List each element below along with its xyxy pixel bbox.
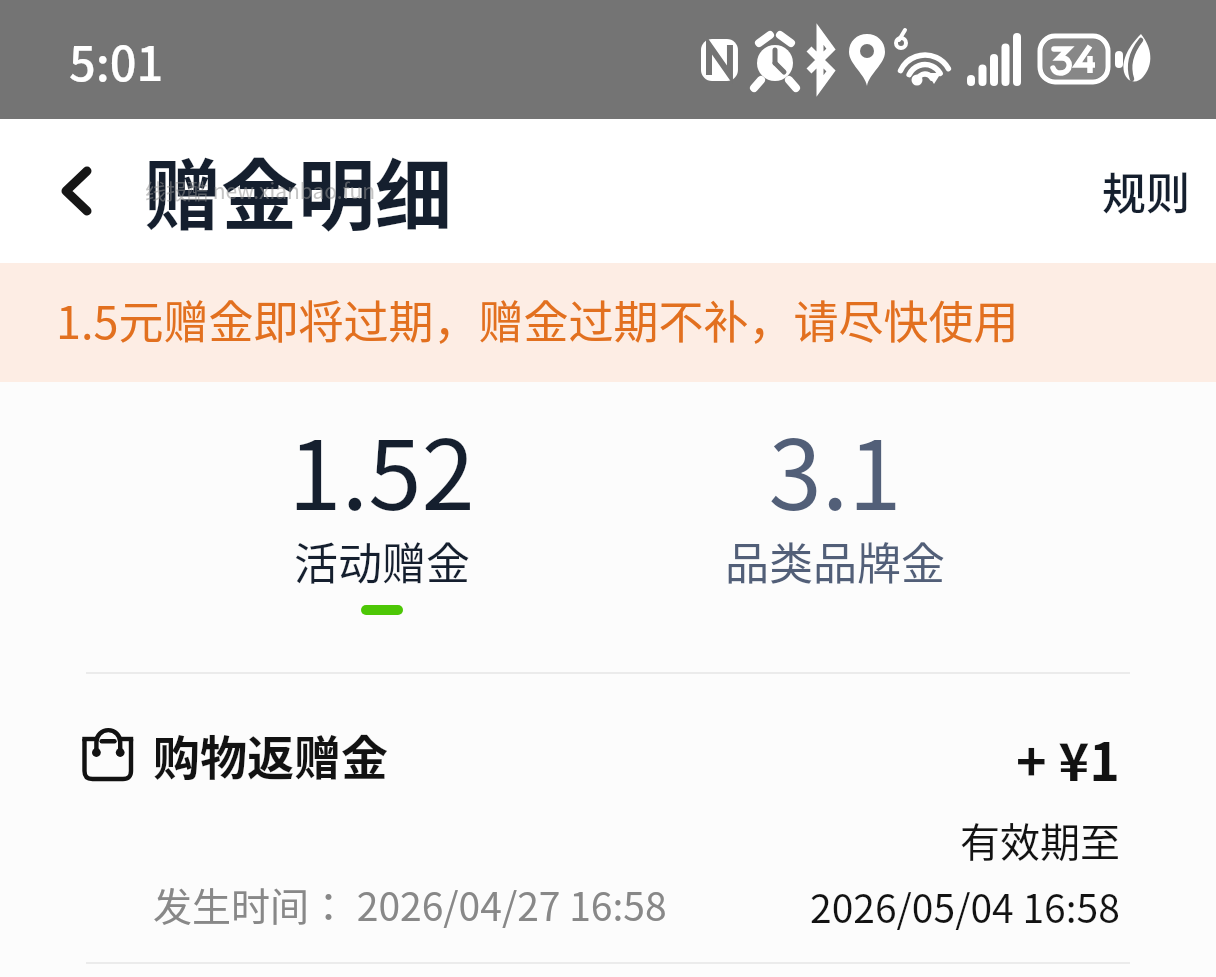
- staticText: 1.5元赠金即将过期，赠金过期不补，请尽快使用: [56, 287, 1019, 352]
- staticText: 品类品牌金: [725, 529, 945, 593]
- staticText: 1.52: [288, 399, 475, 538]
- button[interactable]: 规则: [1078, 149, 1216, 233]
- staticText: 活动赠金: [294, 529, 470, 593]
- staticText: 3.1: [768, 399, 902, 538]
- staticText: 线报酷 new.xianbao.fun: [145, 175, 376, 205]
- button[interactable]: 1.52: [155, 399, 608, 615]
- staticText: 购物返赠金: [153, 720, 388, 788]
- staticText: 2026/05/04 16:58: [810, 878, 1120, 934]
- staticText: 发生时间： 2026/04/27 16:58: [153, 876, 667, 932]
- button[interactable]: 购物返赠金: [0, 674, 1216, 962]
- staticText: + ¥1: [1016, 721, 1120, 796]
- button[interactable]: Back: [24, 153, 100, 229]
- button[interactable]: 3.1: [608, 399, 1061, 615]
- staticText: 规则: [1102, 159, 1190, 223]
- staticText: 赠金明细: [144, 135, 452, 246]
- staticText: 有效期至: [960, 811, 1120, 869]
- staticText: 5:01: [69, 26, 164, 94]
